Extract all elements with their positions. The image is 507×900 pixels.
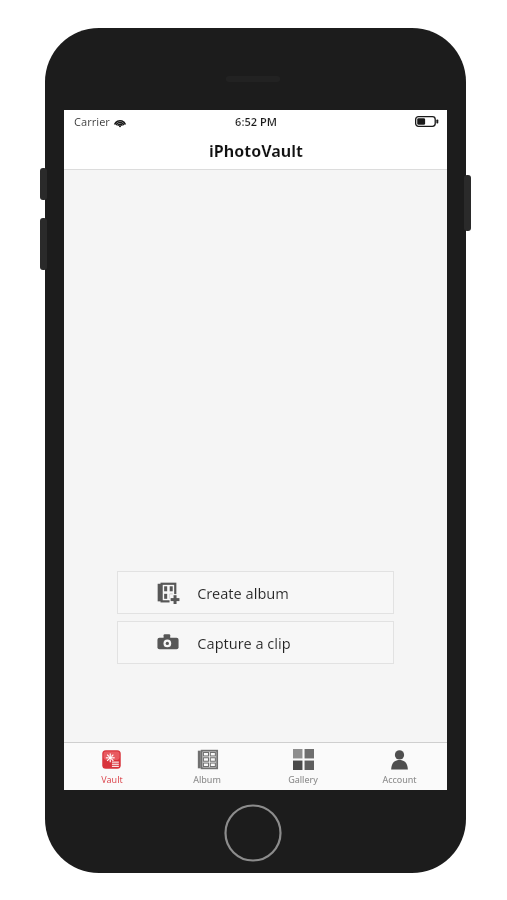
button[interactable]: Album — [159, 743, 255, 790]
button[interactable]: Create album — [117, 571, 394, 614]
button[interactable]: Gallery — [255, 743, 351, 790]
staticText: Carrier — [74, 114, 110, 129]
staticText: Create album — [197, 583, 289, 603]
staticText: 6:52 PM — [235, 114, 277, 129]
staticText: Account — [382, 773, 417, 785]
staticText: Gallery — [288, 773, 318, 785]
button[interactable]: Account — [351, 743, 447, 790]
staticText: iPhotoVault — [209, 140, 303, 162]
staticText: Album — [193, 773, 221, 785]
staticText: Vault — [101, 773, 123, 785]
staticText: Capture a clip — [197, 633, 291, 653]
button[interactable]: Vault — [64, 743, 159, 790]
button[interactable]: Capture a clip — [117, 621, 394, 664]
